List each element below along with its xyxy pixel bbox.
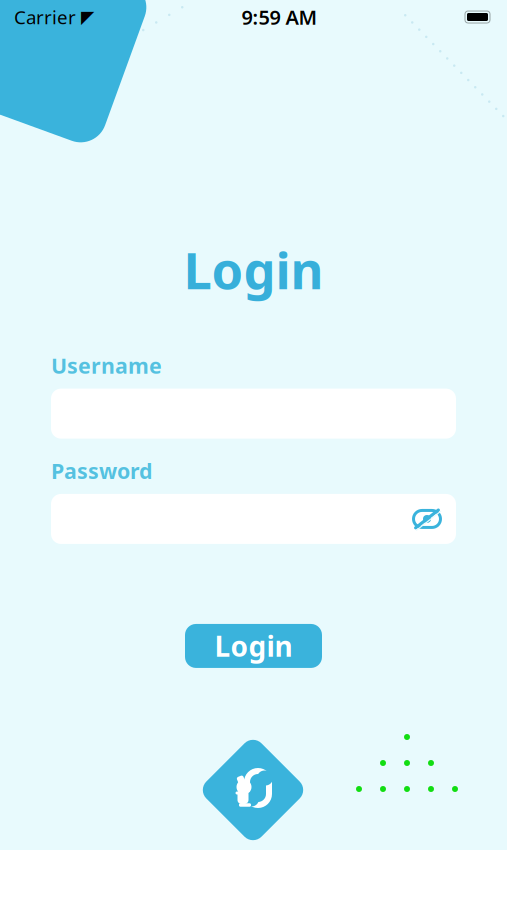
staticText: Login <box>183 236 323 303</box>
staticText: Username <box>51 351 162 380</box>
staticText: Carrier <box>14 5 76 29</box>
staticText: 9:59 AM <box>241 4 317 30</box>
button[interactable]: Login <box>185 624 322 668</box>
staticText: Password <box>51 457 152 485</box>
button[interactable]: Show password <box>398 494 456 544</box>
staticText: ◤ <box>81 7 94 27</box>
staticText: Login <box>214 627 292 665</box>
